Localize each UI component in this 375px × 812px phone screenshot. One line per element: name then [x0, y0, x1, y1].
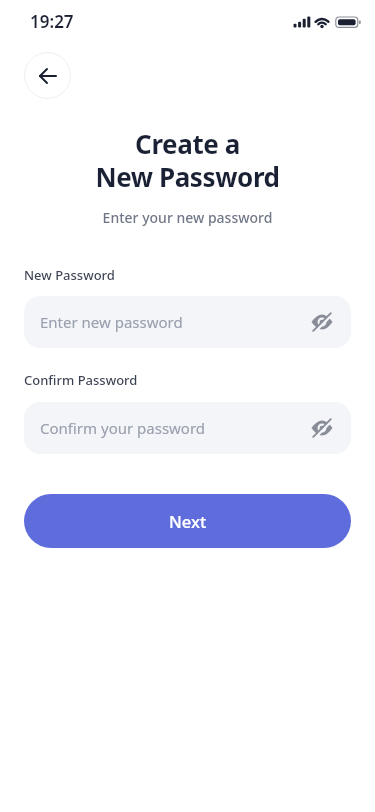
staticText: Confirm your password	[40, 418, 311, 438]
button[interactable]: Enter new password	[24, 296, 351, 348]
button[interactable]: Next	[24, 494, 351, 548]
staticText: Next	[169, 510, 207, 532]
staticText: New Password	[24, 266, 115, 284]
staticText: 19:27	[30, 10, 74, 33]
staticText: Confirm Password	[24, 371, 138, 389]
staticText: Enter new password	[40, 312, 311, 332]
staticText: Create a New Password	[0, 126, 375, 195]
button[interactable]	[24, 52, 71, 99]
staticText: Enter your new password	[0, 208, 375, 227]
button[interactable]: Confirm your password	[24, 402, 351, 454]
